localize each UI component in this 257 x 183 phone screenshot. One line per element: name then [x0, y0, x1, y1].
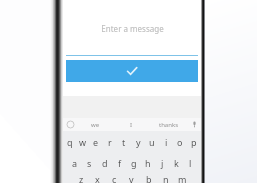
button[interactable]: s: [82, 152, 97, 173]
staticText: u: [149, 136, 155, 148]
button[interactable]: b: [140, 173, 157, 183]
staticText: thanks: [159, 121, 179, 129]
button[interactable]: t: [117, 131, 131, 152]
staticText: I: [130, 121, 133, 129]
staticText: o: [177, 136, 183, 148]
staticText: y: [136, 136, 141, 148]
staticText: l: [189, 157, 192, 169]
button[interactable]: Voice input: [187, 118, 201, 131]
button[interactable]: Send message: [66, 60, 198, 82]
staticText: e: [93, 136, 99, 148]
staticText: d: [102, 157, 108, 169]
button[interactable]: c: [106, 173, 123, 183]
staticText: b: [146, 173, 152, 183]
button[interactable]: z: [73, 173, 89, 183]
staticText: h: [145, 157, 151, 169]
staticText: r: [108, 136, 112, 148]
button[interactable]: a: [67, 152, 82, 173]
staticText: we: [91, 121, 100, 129]
button[interactable]: f: [112, 152, 127, 173]
button[interactable]: h: [141, 152, 155, 173]
staticText: j: [161, 157, 164, 169]
staticText: t: [122, 136, 126, 148]
button[interactable]: g: [127, 152, 141, 173]
button[interactable]: o: [173, 131, 187, 152]
staticText: q: [67, 136, 73, 148]
button[interactable]: thanks: [150, 118, 187, 131]
button[interactable]: I: [113, 118, 150, 131]
button[interactable]: k: [169, 152, 183, 173]
staticText: f: [118, 157, 122, 169]
button[interactable]: w: [76, 131, 89, 152]
button[interactable]: v: [123, 173, 140, 183]
button[interactable]: y: [131, 131, 145, 152]
staticText: n: [163, 173, 169, 183]
button[interactable]: i: [159, 131, 173, 152]
staticText: w: [79, 136, 87, 148]
button[interactable]: r: [103, 131, 117, 152]
button[interactable]: l: [183, 152, 197, 173]
staticText: z: [79, 173, 84, 183]
button[interactable]: x: [89, 173, 106, 183]
button[interactable]: d: [97, 152, 112, 173]
button[interactable]: e: [89, 131, 103, 152]
staticText: s: [87, 157, 92, 169]
button[interactable]: Enter a message: [63, 2, 201, 55]
staticText: Enter a message: [101, 23, 164, 34]
button[interactable]: q: [63, 131, 76, 152]
staticText: x: [95, 173, 100, 183]
button[interactable]: we: [77, 118, 113, 131]
staticText: g: [131, 157, 137, 169]
button[interactable]: j: [155, 152, 169, 173]
button[interactable]: n: [157, 173, 174, 183]
button[interactable]: m: [174, 173, 191, 183]
staticText: i: [165, 136, 168, 148]
staticText: c: [112, 173, 117, 183]
staticText: a: [72, 157, 78, 169]
staticText: v: [129, 173, 134, 183]
staticText: m: [178, 173, 187, 183]
button[interactable]: p: [187, 131, 201, 152]
staticText: k: [174, 157, 179, 169]
button[interactable]: u: [145, 131, 159, 152]
staticText: p: [191, 136, 197, 148]
button[interactable]: Emoji: [63, 118, 77, 131]
